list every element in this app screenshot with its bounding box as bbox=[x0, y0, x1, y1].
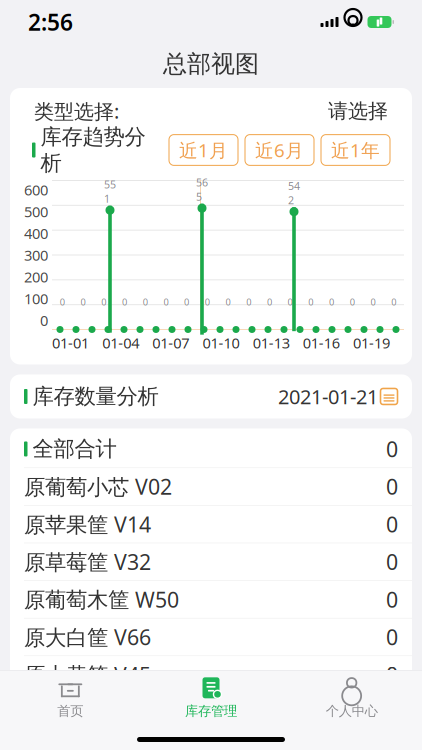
staticText: 400 bbox=[24, 223, 48, 243]
staticText: 0 bbox=[267, 296, 272, 308]
staticText: 2:56 bbox=[28, 7, 73, 37]
staticText: 0 bbox=[391, 296, 396, 308]
staticText: 0 bbox=[386, 472, 398, 501]
staticText: 0 bbox=[163, 296, 168, 308]
staticText: 01-13 bbox=[253, 333, 290, 352]
staticText: 库存数量分析 bbox=[32, 383, 158, 410]
staticText: 0 bbox=[288, 296, 293, 308]
staticText: 0 bbox=[81, 296, 86, 308]
staticText: 0 bbox=[122, 296, 127, 308]
staticText: 0 bbox=[386, 623, 398, 651]
staticText: 原苹果筐 V14 bbox=[24, 510, 151, 538]
button[interactable]: 全部合计 bbox=[10, 430, 412, 468]
staticText: 请选择 bbox=[328, 99, 388, 123]
staticText: 0 bbox=[329, 296, 334, 308]
staticText: 0 bbox=[386, 660, 398, 689]
staticText: 0 bbox=[101, 296, 106, 308]
button[interactable]: 近6月 bbox=[245, 135, 314, 165]
staticText: 首页 bbox=[57, 703, 83, 719]
staticText: 0 bbox=[350, 296, 355, 308]
staticText: 200 bbox=[24, 267, 48, 286]
button[interactable]: 库存管理 bbox=[141, 670, 281, 719]
staticText: 565 bbox=[196, 175, 208, 204]
staticText: 0 bbox=[225, 296, 230, 308]
staticText: 近1年 bbox=[331, 138, 380, 162]
staticText: 0 bbox=[386, 510, 398, 538]
button[interactable]: 原苹果筐 V14 bbox=[10, 506, 412, 543]
staticText: 0 bbox=[370, 296, 375, 308]
staticText: 2021-01-21 bbox=[278, 383, 378, 410]
staticText: 01-10 bbox=[202, 333, 239, 352]
staticText: 01-19 bbox=[353, 333, 390, 352]
staticText: 近6月 bbox=[255, 138, 304, 162]
button[interactable]: 首页 bbox=[0, 670, 141, 719]
staticText: 0 bbox=[386, 548, 398, 576]
button[interactable]: 2021-01-21 bbox=[278, 383, 398, 410]
staticText: 0 bbox=[205, 296, 210, 308]
button[interactable]: 近1年 bbox=[321, 135, 390, 165]
staticText: 总部视图 bbox=[163, 49, 259, 79]
staticText: 库存管理 bbox=[185, 703, 237, 719]
button[interactable]: 原大白筐 V66 bbox=[10, 618, 412, 656]
staticText: 原大黄筐 V45 bbox=[24, 660, 151, 689]
button[interactable]: 原葡萄木筐 W50 bbox=[10, 581, 412, 618]
staticText: 全部合计 bbox=[32, 436, 116, 462]
staticText: 原葡萄木筐 W50 bbox=[24, 585, 179, 613]
staticText: 542 bbox=[288, 179, 300, 207]
staticText: 原葡萄小芯 V02 bbox=[24, 472, 172, 501]
staticText: 库存趋势分析 bbox=[40, 124, 145, 176]
staticText: 01-04 bbox=[102, 333, 139, 352]
staticText: 0 bbox=[246, 296, 251, 308]
staticText: 0 bbox=[386, 585, 398, 613]
staticText: 600 bbox=[24, 180, 48, 199]
staticText: 500 bbox=[24, 202, 48, 221]
staticText: 100 bbox=[24, 289, 48, 308]
staticText: 0 bbox=[143, 296, 148, 308]
button[interactable]: 类型选择: bbox=[18, 90, 404, 132]
button[interactable]: 原葡萄小芯 V02 bbox=[10, 468, 412, 506]
button[interactable]: 原大黄筐 V45 bbox=[10, 656, 412, 693]
staticText: 原大白筐 V66 bbox=[24, 623, 151, 651]
staticText: 551 bbox=[104, 177, 116, 206]
staticText: 0 bbox=[184, 296, 189, 308]
staticText: 类型选择: bbox=[34, 98, 119, 124]
button[interactable]: 近1月 bbox=[169, 135, 238, 165]
staticText: 01-16 bbox=[303, 333, 340, 352]
staticText: 300 bbox=[24, 245, 48, 265]
staticText: 原草莓筐 V32 bbox=[24, 548, 151, 576]
staticText: 01-01 bbox=[52, 333, 89, 352]
staticText: 个人中心 bbox=[326, 703, 378, 719]
staticText: 0 bbox=[308, 296, 313, 308]
button[interactable]: 原草莓筐 V32 bbox=[10, 543, 412, 581]
staticText: 0 bbox=[40, 310, 48, 330]
staticText: 近1月 bbox=[179, 138, 228, 162]
staticText: 0 bbox=[60, 296, 65, 308]
staticText: 01-07 bbox=[152, 333, 189, 352]
staticText: 0 bbox=[386, 435, 398, 463]
button[interactable]: 个人中心 bbox=[281, 670, 422, 719]
